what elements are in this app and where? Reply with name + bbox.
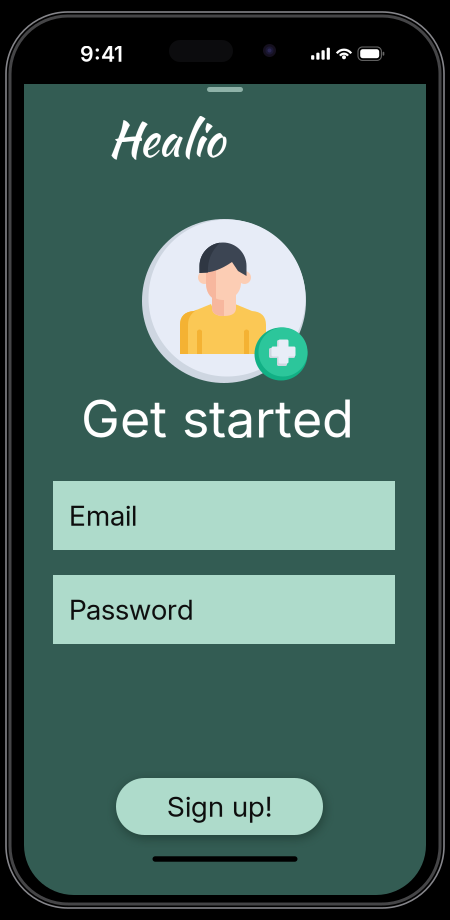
button[interactable]: Email [53,481,395,550]
staticText: Get started [81,387,354,450]
staticText: Healio [108,104,224,174]
staticText: 9:41 [80,41,123,67]
button[interactable]: Sign up! [116,778,323,835]
staticText: Email [69,499,137,532]
button[interactable]: Password [53,575,395,644]
staticText: Sign up! [167,790,272,823]
staticText: Password [69,593,194,626]
